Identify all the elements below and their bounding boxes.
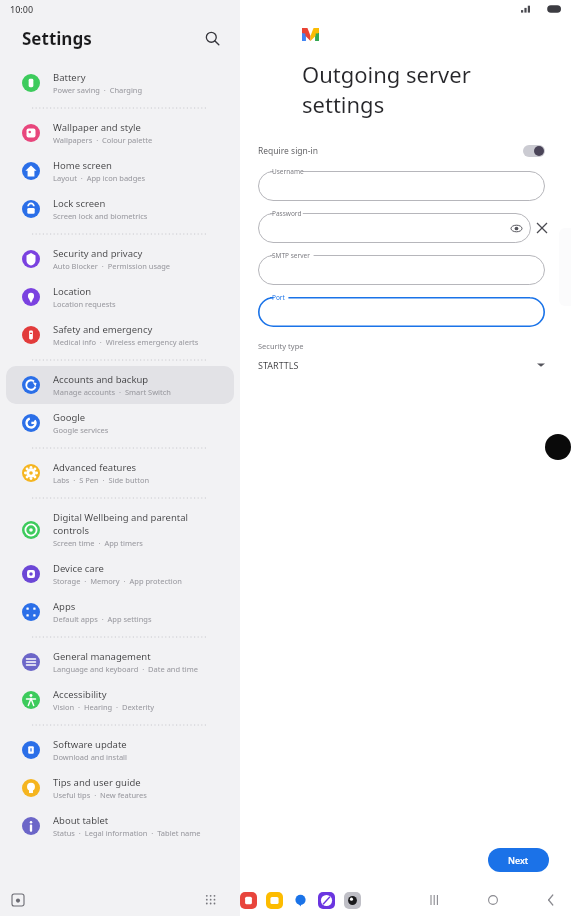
staticText: Language and keyboard · Date and time: [53, 664, 198, 674]
staticText: Wallpapers · Colour palette: [53, 135, 153, 145]
staticText: Safety and emergency: [53, 323, 153, 336]
button[interactable]: Wallpaper and style: [6, 114, 234, 152]
staticText: 10:00: [10, 3, 34, 15]
button[interactable]: Password: [258, 213, 531, 243]
staticText: Device care: [53, 562, 104, 575]
staticText: Vision · Hearing · Dexterity: [53, 702, 155, 712]
staticText: Status · Legal information · Tablet name: [53, 828, 201, 838]
button[interactable]: Recents: [423, 888, 447, 912]
staticText: Location requests: [53, 299, 116, 309]
button[interactable]: Accounts and backup: [6, 366, 234, 404]
button[interactable]: General management: [6, 643, 234, 681]
button[interactable]: Home screen: [6, 152, 234, 190]
button[interactable]: Battery: [6, 64, 234, 102]
staticText: Apps: [53, 600, 76, 613]
button[interactable]: About tablet: [6, 807, 234, 845]
staticText: Battery: [53, 71, 86, 84]
staticText: Storage · Memory · App protection: [53, 576, 182, 586]
staticText: General management: [53, 650, 151, 663]
button[interactable]: Digital Wellbeing and parental controls: [6, 504, 234, 555]
staticText: Next: [508, 854, 529, 866]
button[interactable]: Search: [198, 24, 226, 52]
staticText: Software update: [53, 738, 127, 751]
button[interactable]: Internet: [318, 892, 335, 909]
button[interactable]: Require sign-in: [258, 141, 545, 161]
staticText: Power saving · Charging: [53, 85, 143, 95]
button[interactable]: Home: [481, 888, 505, 912]
button[interactable]: Software update: [6, 731, 234, 769]
staticText: SMTP server: [272, 251, 310, 260]
staticText: Outgoing server settings: [302, 59, 471, 119]
button[interactable]: SMTP server: [258, 255, 545, 285]
staticText: Tips and user guide: [53, 776, 141, 789]
staticText: STARTTLS: [258, 359, 299, 371]
button[interactable]: Lock screen: [6, 190, 234, 228]
button[interactable]: Accessibility: [6, 681, 234, 719]
button[interactable]: STARTTLS: [258, 359, 545, 371]
staticText: Security and privacy: [53, 247, 143, 260]
staticText: Manage accounts · Smart Switch: [53, 387, 171, 397]
staticText: Auto Blocker · Permission usage: [53, 261, 171, 271]
button[interactable]: Username: [258, 171, 545, 201]
staticText: Labs · S Pen · Side button: [53, 475, 150, 485]
staticText: Download and install: [53, 752, 127, 762]
staticText: Useful tips · New features: [53, 790, 147, 800]
staticText: Layout · App icon badges: [53, 173, 146, 183]
button[interactable]: Keep: [240, 892, 257, 909]
staticText: Username: [272, 167, 304, 176]
staticText: Advanced features: [53, 461, 137, 474]
button[interactable]: Port: [258, 297, 545, 327]
button[interactable]: Tips and user guide: [6, 769, 234, 807]
staticText: Location: [53, 285, 92, 298]
button[interactable]: Clear: [531, 217, 553, 239]
button[interactable]: Messages: [292, 892, 309, 909]
button[interactable]: Next: [488, 848, 549, 872]
button[interactable]: Show password: [509, 221, 523, 235]
button[interactable]: Advanced features: [6, 454, 234, 492]
button[interactable]: Google: [6, 404, 234, 442]
staticText: Accessibility: [53, 688, 107, 701]
button[interactable]: All apps: [202, 891, 220, 909]
staticText: Password: [272, 209, 302, 218]
staticText: Lock screen: [53, 197, 106, 210]
staticText: Port: [272, 293, 285, 302]
staticText: Default apps · App settings: [53, 614, 152, 624]
button[interactable]: Security and privacy: [6, 240, 234, 278]
button[interactable]: Apps: [6, 593, 234, 631]
staticText: Settings: [22, 27, 92, 50]
staticText: About tablet: [53, 814, 109, 827]
button[interactable]: Safety and emergency: [6, 316, 234, 354]
staticText: Home screen: [53, 159, 112, 172]
button[interactable]: Location: [6, 278, 234, 316]
staticText: Screen lock and biometrics: [53, 211, 148, 221]
button[interactable]: Camera: [344, 892, 361, 909]
staticText: Require sign-in: [258, 145, 319, 157]
button[interactable]: Back: [539, 888, 563, 912]
staticText: Wallpaper and style: [53, 121, 141, 134]
staticText: Security type: [258, 341, 304, 351]
staticText: Medical info · Wireless emergency alerts: [53, 337, 199, 347]
staticText: Screen time · App timers: [53, 538, 143, 548]
staticText: Google services: [53, 425, 109, 435]
button[interactable]: Screenshot: [8, 890, 28, 910]
staticText: Digital Wellbeing and parental controls: [53, 511, 226, 537]
staticText: Google: [53, 411, 86, 424]
button[interactable]: Device care: [6, 555, 234, 593]
button[interactable]: Files: [266, 892, 283, 909]
staticText: Accounts and backup: [53, 373, 149, 386]
